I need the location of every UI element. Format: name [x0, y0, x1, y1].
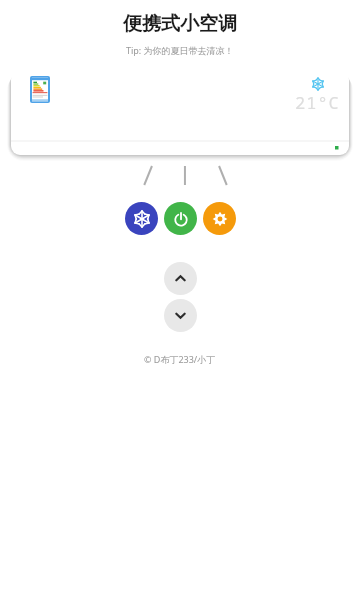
button[interactable]: 21°C	[11, 71, 349, 155]
staticText: © D布丁233/小丁	[144, 353, 216, 365]
staticText: 便携式小空调	[123, 12, 237, 36]
button[interactable]: Increase temperature	[164, 262, 197, 295]
button[interactable]: Decrease temperature	[164, 299, 197, 332]
button[interactable]: Cooling mode	[125, 202, 158, 235]
button[interactable]: Power	[164, 202, 197, 235]
staticText: 21°C	[295, 91, 340, 114]
button[interactable]: Settings	[203, 202, 236, 235]
staticText: Tip: 为你的夏日带去清凉！	[126, 44, 234, 56]
